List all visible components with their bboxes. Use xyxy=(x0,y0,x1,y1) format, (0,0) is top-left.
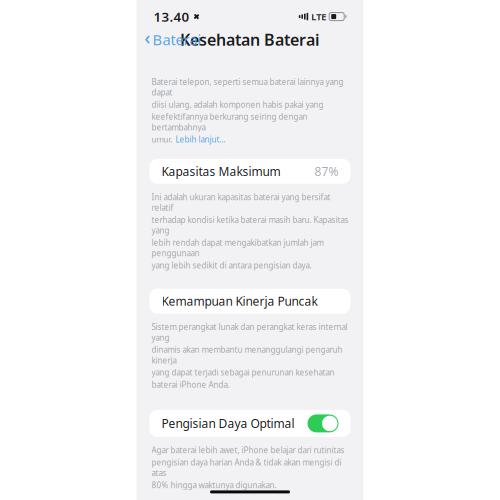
button[interactable]: Pengisian Daya Optimal xyxy=(149,410,350,437)
staticText: pengisian daya harian Anda & tidak akan … xyxy=(151,457,341,478)
staticText: dinamis akan membantu menanggulangi peng… xyxy=(151,344,342,366)
button[interactable]: Lebih lanjut... xyxy=(175,134,225,145)
staticText: yang dapat terjadi sebagai penurunan kes… xyxy=(151,367,334,378)
staticText: 80% hingga waktunya digunakan. xyxy=(151,480,276,490)
staticText: umur. xyxy=(151,134,172,145)
button[interactable]: Kemampuan Kinerja Puncak xyxy=(149,289,350,314)
staticText: terhadap kondisi ketika baterai masih ba… xyxy=(151,215,348,236)
staticText: Kemampuan Kinerja Puncak xyxy=(161,293,317,309)
staticText: Kapasitas Maksimum xyxy=(161,163,280,179)
staticText: baterai iPhone Anda. xyxy=(151,379,229,390)
staticText: Lebih lanjut... xyxy=(175,134,225,145)
button[interactable]: Baterai xyxy=(144,24,207,55)
staticText: diisi ulang, adalah komponen habis pakai… xyxy=(151,99,323,110)
staticText: Sistem perangkat lunak dan perangkat ker… xyxy=(151,322,347,343)
staticText: LTE xyxy=(311,10,326,23)
staticText: Pengisian Daya Optimal xyxy=(161,415,294,431)
staticText: 87% xyxy=(314,163,338,179)
button[interactable]: Kapasitas Maksimum xyxy=(149,159,350,184)
staticText: Baterai telepon, seperti semua baterai l… xyxy=(151,77,343,98)
staticText: Agar baterai lebih awet, iPhone belajar … xyxy=(151,445,344,455)
staticText: Ini adalah ukuran kapasitas baterai yang… xyxy=(151,192,330,213)
staticText: lebih rendah dapat mengakibatkan jumlah … xyxy=(151,237,323,258)
staticText: yang lebih sedikit di antara pengisian d… xyxy=(151,260,311,271)
staticText: keefektifannya berkurang seiring dengan … xyxy=(151,111,307,133)
staticText: Baterai xyxy=(152,30,201,49)
staticText: Kesehatan Baterai xyxy=(180,29,320,50)
staticText: 13.40 xyxy=(153,8,189,25)
